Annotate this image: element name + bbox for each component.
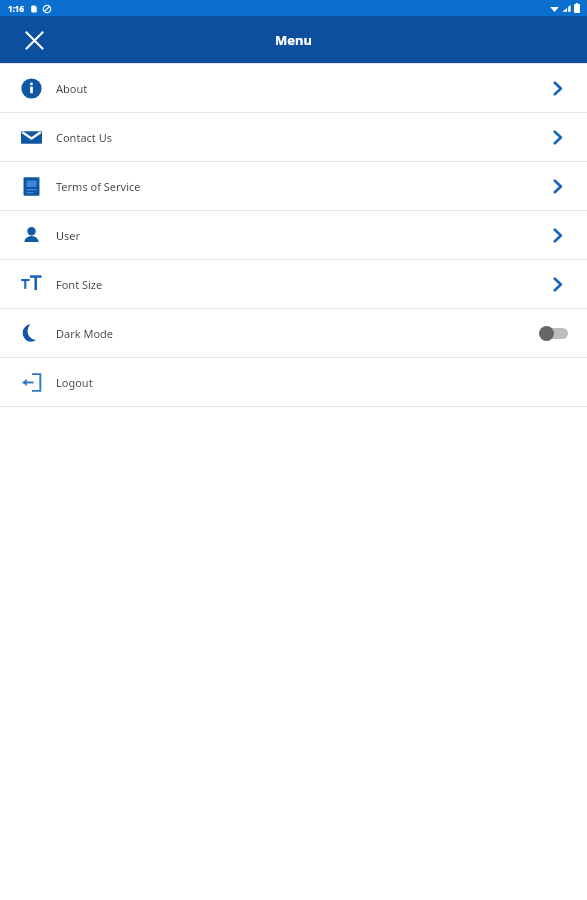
button[interactable]: About xyxy=(0,64,587,112)
button[interactable]: User xyxy=(0,211,587,259)
button[interactable]: Logout xyxy=(0,358,587,406)
button[interactable]: Terms of Service xyxy=(0,162,587,210)
staticText: Contact Us xyxy=(56,130,112,145)
staticText: User xyxy=(56,228,81,243)
staticText: Logout xyxy=(56,375,93,390)
button[interactable]: Contact Us xyxy=(0,113,587,161)
staticText: Menu xyxy=(275,31,312,49)
staticText: 1:16 xyxy=(8,3,24,14)
staticText: Terms of Service xyxy=(56,179,141,194)
staticText: Font Size xyxy=(56,277,103,292)
button[interactable]: Font Size xyxy=(0,260,587,308)
button[interactable]: Dark Mode xyxy=(0,309,587,357)
staticText: About xyxy=(56,81,88,96)
button[interactable]: Dark Mode toggle xyxy=(537,322,571,344)
button[interactable]: Close xyxy=(14,20,54,60)
staticText: Dark Mode xyxy=(56,326,114,341)
